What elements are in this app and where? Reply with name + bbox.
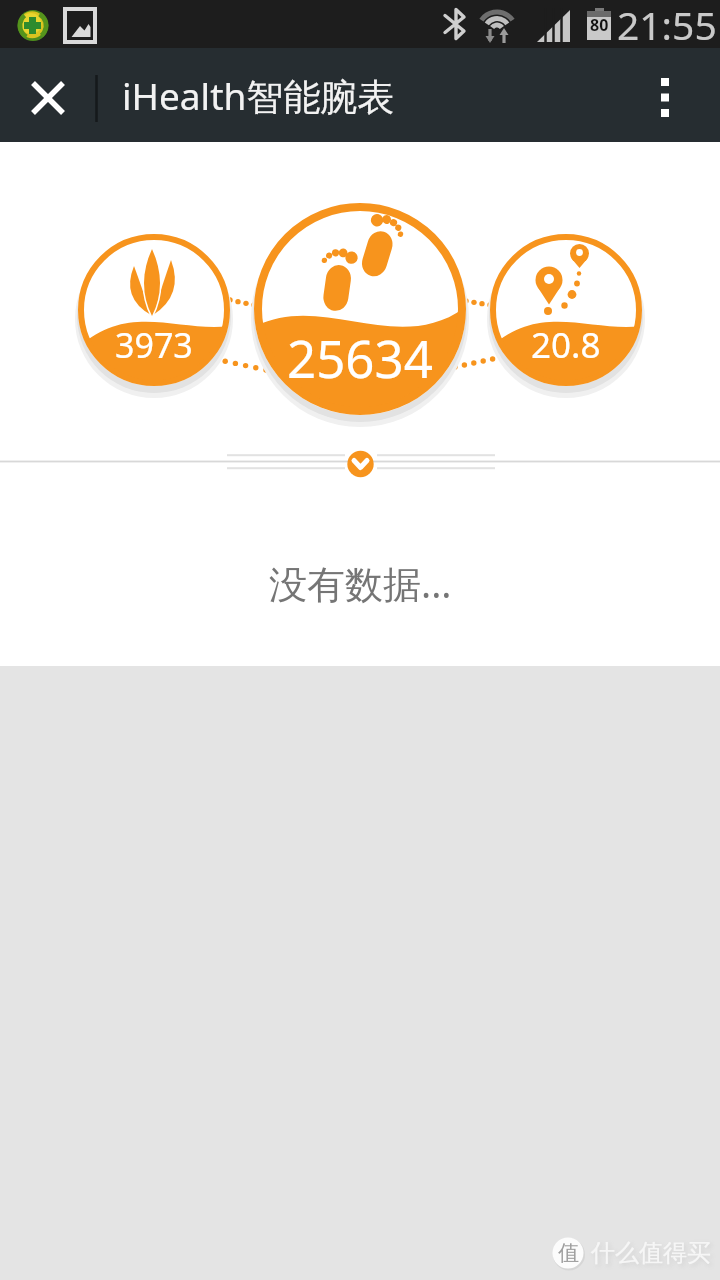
staticText: 值 (558, 1240, 579, 1266)
staticText: 3973 (115, 322, 193, 368)
staticText: 80 (590, 14, 609, 36)
staticText: 21:55 (617, 0, 717, 51)
button[interactable] (340, 444, 380, 484)
staticText: 没有数据... (269, 557, 452, 609)
button[interactable] (78, 234, 230, 386)
staticText: 20.8 (531, 321, 601, 369)
button[interactable] (14, 62, 84, 132)
button[interactable] (630, 62, 700, 132)
button[interactable] (254, 203, 466, 415)
button[interactable] (490, 234, 642, 386)
staticText: 25634 (287, 323, 433, 392)
staticText: iHealth智能腕表 (122, 70, 395, 121)
staticText: 什么值得买 (591, 1238, 711, 1268)
